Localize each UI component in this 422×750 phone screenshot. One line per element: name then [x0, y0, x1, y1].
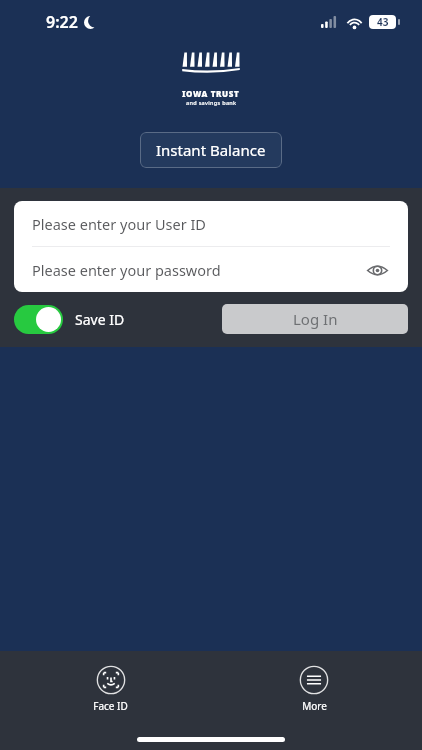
staticText: More	[302, 699, 327, 713]
other: More	[299, 665, 329, 695]
staticText: IOWA TRUST	[182, 88, 240, 99]
staticText: and savings bank	[186, 99, 237, 106]
staticText: Log In	[293, 309, 338, 329]
staticText: Please enter your password	[32, 260, 221, 280]
staticText: Save ID	[75, 310, 125, 329]
staticText: 9:22	[46, 11, 78, 33]
other: Iowa Trust and Savings Bank logo	[181, 51, 241, 87]
staticText: Please enter your User ID	[32, 214, 206, 234]
button[interactable]: Show password	[364, 257, 390, 283]
staticText: Instant Balance	[156, 140, 266, 160]
other: Face ID	[96, 665, 126, 695]
button[interactable]: More	[291, 663, 337, 715]
button[interactable]: Log In	[222, 304, 408, 334]
button[interactable]: Please enter your password	[14, 247, 408, 292]
staticText: Face ID	[93, 699, 128, 713]
staticText: 43	[377, 15, 389, 29]
button[interactable]: Instant Balance	[140, 132, 282, 168]
button[interactable]: Face ID	[85, 663, 136, 715]
button[interactable]: Save ID	[14, 305, 125, 334]
button[interactable]: Please enter your User ID	[14, 201, 408, 246]
